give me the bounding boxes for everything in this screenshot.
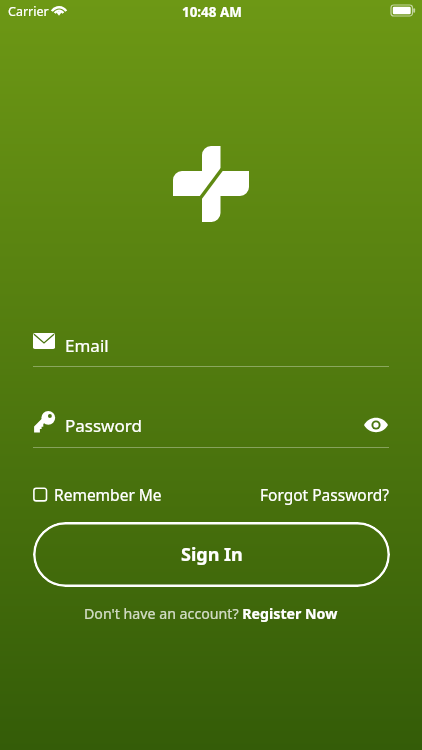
staticText: Sign In [181,542,243,567]
button[interactable]: Remember Me [33,483,162,505]
button[interactable]: Sign In [33,522,390,587]
staticText: Remember Me [54,484,162,505]
button[interactable]: Forgot Password? [258,482,392,507]
staticText: Carrier [8,3,49,20]
staticText: Password [65,414,142,437]
button[interactable]: Don't have an account? Register Now [84,604,338,623]
staticText: Email [65,334,109,357]
staticText: Forgot Password? [260,484,390,505]
button[interactable]: Show password [359,409,393,441]
staticText: 10:48 AM [182,3,242,21]
